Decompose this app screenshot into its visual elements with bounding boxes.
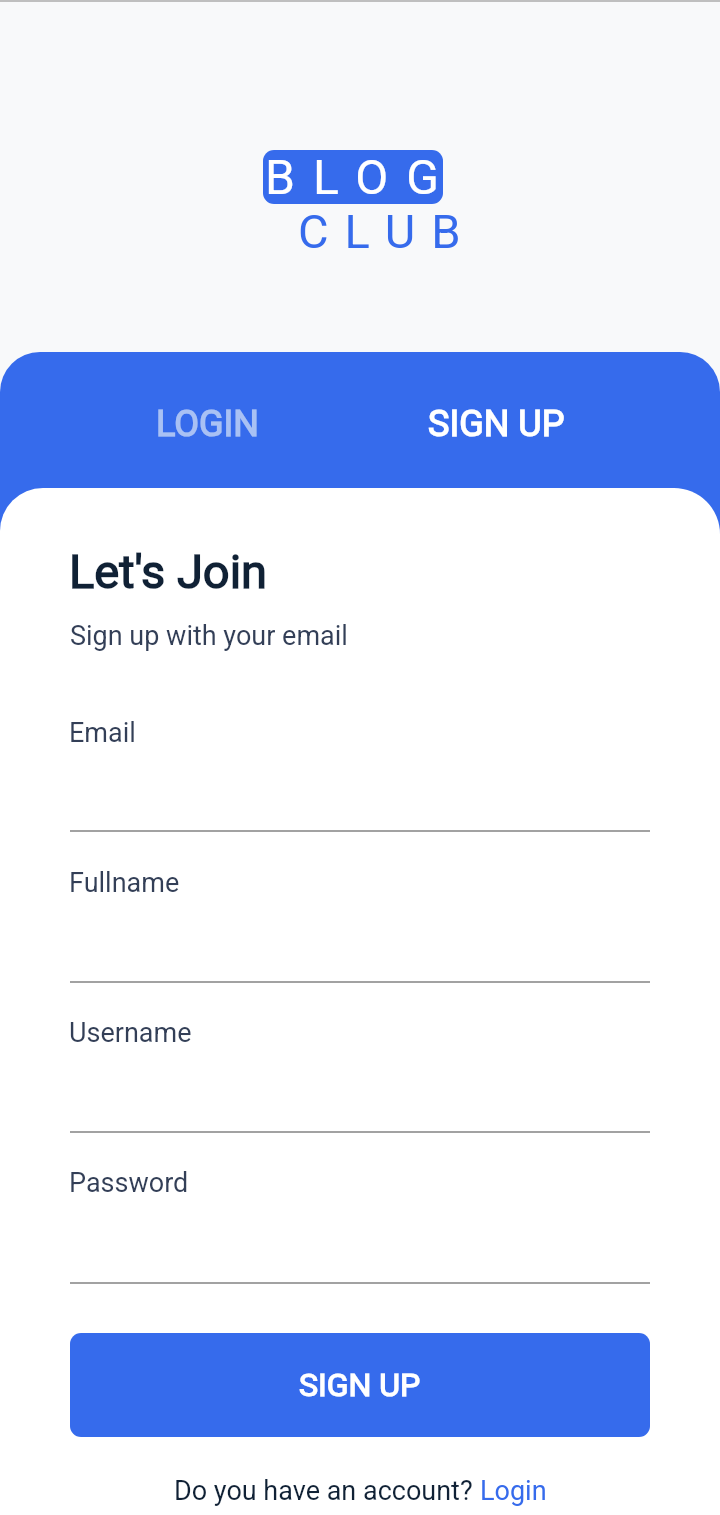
staticText: LOGIN [156, 403, 260, 445]
button[interactable]: Fullname [70, 853, 650, 983]
staticText: Password [69, 1167, 189, 1199]
staticText: Do you have an account? [174, 1475, 480, 1507]
button[interactable]: SIGN UP [70, 1333, 650, 1437]
staticText: SIGN UP [428, 403, 565, 445]
button[interactable]: Password [70, 1153, 650, 1283]
button[interactable]: SIGN UP [352, 352, 640, 496]
staticText: SIGN UP [299, 1366, 421, 1404]
staticText: Username [69, 1017, 192, 1049]
staticText: CLUB [298, 204, 477, 259]
button[interactable]: Login [480, 1475, 547, 1507]
staticText: Email [69, 717, 136, 749]
staticText: BLOG [265, 149, 457, 205]
button[interactable]: LOGIN [64, 352, 352, 496]
button[interactable]: Email [70, 703, 650, 833]
staticText: Let's Join [69, 544, 268, 599]
button[interactable]: Username [70, 1003, 650, 1133]
staticText: Sign up with your email [70, 620, 348, 652]
staticText: Fullname [69, 867, 180, 899]
